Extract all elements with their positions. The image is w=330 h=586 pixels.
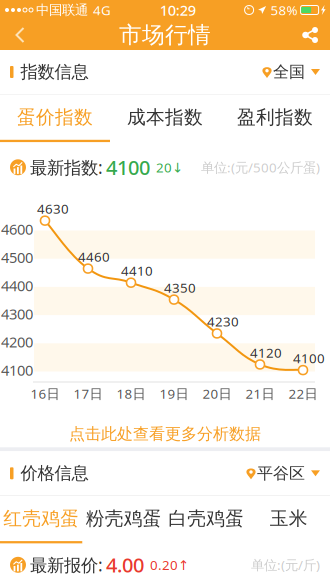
button[interactable]: 蛋价指数: [0, 95, 110, 142]
staticText: 19日: [159, 385, 188, 402]
staticText: 4410: [121, 262, 153, 279]
staticText: 最新报价:: [30, 553, 103, 576]
staticText: 4100: [1, 360, 33, 380]
staticText: 20↓: [156, 158, 183, 176]
staticText: 4120: [250, 344, 282, 361]
staticText: 4600: [1, 219, 33, 239]
staticText: 4230: [207, 313, 239, 330]
button[interactable]: 玉米: [247, 496, 330, 544]
staticText: 4.00: [106, 551, 144, 578]
button[interactable]: Back: [0, 20, 40, 50]
staticText: 4200: [1, 332, 33, 352]
staticText: 22日: [288, 385, 317, 402]
staticText: 21日: [245, 385, 274, 402]
staticText: 市场行情: [119, 21, 211, 49]
staticText: 4400: [1, 276, 33, 295]
staticText: 单位:(元/500公斤蛋): [201, 158, 320, 176]
staticText: 4100: [293, 349, 325, 367]
button[interactable]: 成本指数: [110, 95, 220, 142]
staticText: 20日: [202, 385, 231, 402]
staticText: 16日: [30, 385, 59, 402]
staticText: 价格信息: [20, 463, 88, 484]
staticText: 17日: [73, 385, 102, 402]
staticText: 成本指数: [127, 106, 203, 129]
staticText: 4460: [78, 248, 110, 265]
staticText: 58%: [271, 1, 298, 19]
staticText: 白壳鸡蛋: [168, 507, 244, 530]
button[interactable]: 红壳鸡蛋: [0, 496, 82, 544]
staticText: 蛋价指数: [17, 106, 93, 129]
staticText: 10:29: [160, 0, 196, 20]
staticText: 中国联通: [36, 2, 88, 18]
button[interactable]: 粉壳鸡蛋: [82, 496, 165, 544]
button[interactable]: Share: [290, 20, 330, 50]
staticText: 玉米: [270, 507, 308, 530]
staticText: 4630: [37, 200, 69, 217]
staticText: 4500: [1, 248, 33, 267]
staticText: 0.20↑: [150, 556, 189, 574]
staticText: 18日: [116, 385, 145, 402]
staticText: 单位:(元/斤): [251, 556, 320, 574]
staticText: 全国: [273, 62, 305, 82]
button[interactable]: 盈利指数: [220, 95, 330, 142]
staticText: 4G: [93, 1, 111, 19]
staticText: 盈利指数: [237, 106, 313, 129]
staticText: 指数信息: [20, 61, 88, 83]
button[interactable]: 全国: [262, 62, 330, 82]
button[interactable]: 白壳鸡蛋: [165, 496, 247, 544]
staticText: 4350: [164, 279, 196, 296]
staticText: 平谷区: [257, 463, 305, 483]
button[interactable]: 平谷区: [246, 463, 330, 483]
staticText: 点击此处查看更多分析数据: [69, 424, 261, 444]
staticText: 红壳鸡蛋: [3, 507, 79, 530]
staticText: 最新指数:: [30, 156, 103, 179]
staticText: 粉壳鸡蛋: [86, 507, 162, 530]
staticText: 4300: [1, 304, 33, 323]
button[interactable]: 点击此处查看更多分析数据: [0, 420, 330, 447]
staticText: 4100: [106, 154, 150, 181]
